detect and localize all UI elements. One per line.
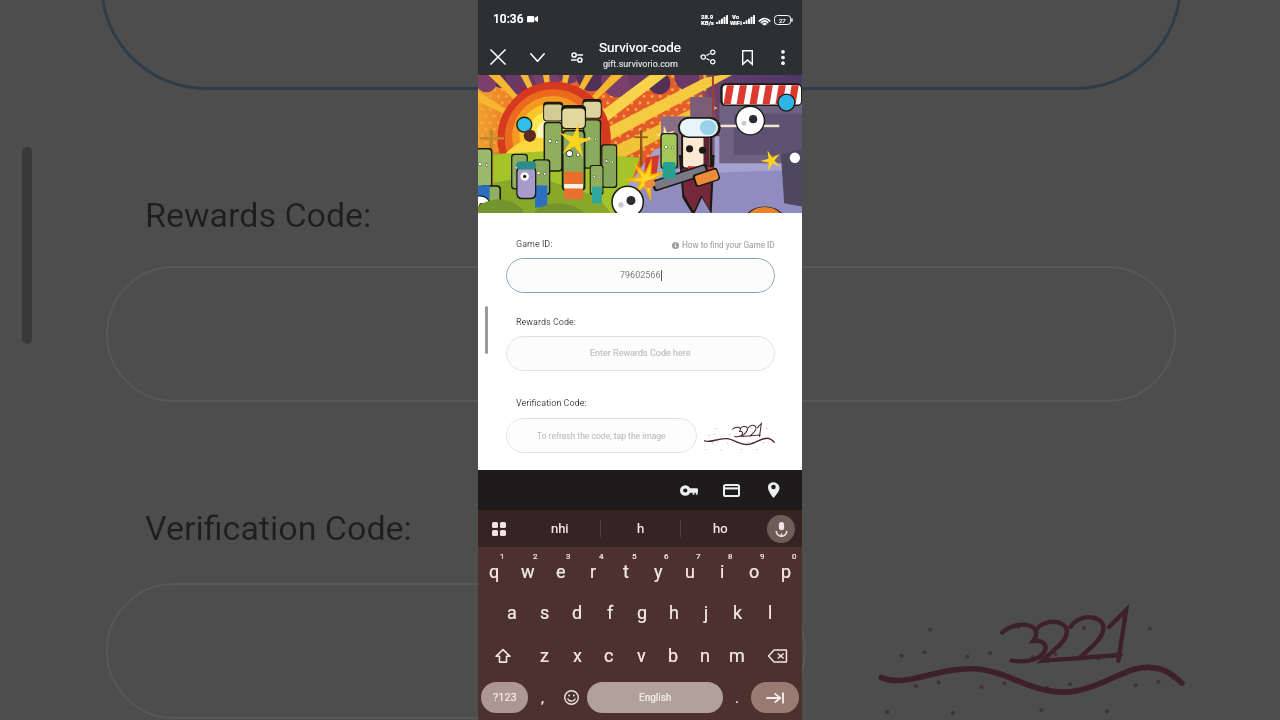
button[interactable]: h bbox=[658, 591, 690, 634]
button[interactable]: Next bbox=[751, 682, 799, 713]
staticText: English bbox=[639, 692, 672, 704]
button[interactable]: Emoji bbox=[556, 682, 587, 713]
button[interactable]: Enter Rewards Code here bbox=[506, 336, 775, 371]
staticText: Game ID: bbox=[516, 239, 553, 250]
staticText: g bbox=[637, 602, 648, 623]
button[interactable]: y bbox=[642, 547, 674, 591]
staticText: Survivor-code bbox=[599, 39, 681, 55]
staticText: 5 bbox=[632, 552, 637, 561]
button[interactable]: More options bbox=[766, 40, 800, 74]
staticText: 7 bbox=[696, 552, 701, 561]
staticText: gift.survivorio.com bbox=[603, 59, 678, 70]
button[interactable]: j bbox=[690, 591, 722, 634]
button[interactable]: Page info bbox=[560, 40, 594, 74]
button[interactable]: Clipboard bbox=[478, 510, 520, 547]
staticText: 2 bbox=[533, 552, 538, 561]
staticText: o bbox=[749, 561, 760, 582]
staticText: h bbox=[637, 521, 645, 536]
button[interactable]: Refresh verification code image bbox=[703, 417, 775, 453]
button[interactable]: a bbox=[495, 591, 528, 634]
staticText: 6 bbox=[664, 552, 669, 561]
button[interactable]: How to find your Game ID bbox=[672, 240, 775, 250]
staticText: t bbox=[623, 561, 629, 582]
button[interactable]: Close bbox=[481, 40, 515, 74]
staticText: How to find your Game ID bbox=[682, 240, 775, 250]
button[interactable]: c bbox=[593, 634, 625, 677]
button[interactable]: l bbox=[754, 591, 786, 634]
staticText: 9 bbox=[760, 552, 765, 561]
button[interactable]: b bbox=[657, 634, 689, 677]
staticText: 4 bbox=[599, 552, 604, 561]
staticText: nhi bbox=[551, 521, 569, 536]
staticText: h bbox=[669, 602, 679, 623]
button[interactable]: Voice input bbox=[760, 510, 802, 547]
button[interactable]: v bbox=[625, 634, 657, 677]
button[interactable]: w bbox=[511, 547, 544, 591]
staticText: To refresh the co bbox=[230, 627, 485, 667]
staticText: e bbox=[556, 561, 566, 582]
button[interactable]: Share bbox=[691, 40, 725, 74]
button[interactable]: Addresses bbox=[752, 470, 794, 510]
staticText: a bbox=[507, 602, 517, 623]
button[interactable]: s bbox=[528, 591, 561, 634]
button[interactable]: nhi bbox=[520, 510, 600, 547]
staticText: f bbox=[607, 602, 614, 623]
staticText: 0 bbox=[792, 552, 797, 561]
staticText: u bbox=[685, 561, 695, 582]
staticText: z bbox=[540, 645, 549, 666]
button[interactable]: d bbox=[561, 591, 594, 634]
button[interactable]: t bbox=[610, 547, 642, 591]
staticText: p bbox=[781, 561, 792, 582]
button[interactable]: English bbox=[587, 682, 723, 713]
button[interactable]: Bookmark bbox=[730, 40, 764, 74]
button[interactable]: u bbox=[674, 547, 706, 591]
staticText: w bbox=[521, 561, 535, 582]
button[interactable]: r bbox=[577, 547, 610, 591]
button[interactable]: q bbox=[478, 547, 511, 591]
staticText: Verification Code: bbox=[516, 398, 587, 409]
button[interactable]: g bbox=[626, 591, 658, 634]
staticText: re bbox=[794, 316, 824, 356]
staticText: , bbox=[541, 689, 544, 707]
button[interactable]: h bbox=[601, 510, 680, 547]
staticText: m bbox=[729, 645, 745, 666]
button[interactable]: , bbox=[528, 682, 556, 713]
button[interactable]: o bbox=[738, 547, 770, 591]
button[interactable]: ho bbox=[681, 510, 760, 547]
staticText: Rewards Code: bbox=[145, 195, 372, 235]
button[interactable]: Passwords bbox=[668, 470, 710, 510]
button[interactable]: z bbox=[528, 634, 561, 677]
button[interactable]: 79602566 bbox=[506, 258, 775, 293]
staticText: 10:36 bbox=[493, 12, 524, 26]
staticText: x bbox=[573, 645, 582, 666]
staticText: ho bbox=[713, 521, 728, 536]
button[interactable]: x bbox=[561, 634, 593, 677]
button[interactable]: f bbox=[594, 591, 626, 634]
button[interactable]: . bbox=[723, 682, 751, 713]
button[interactable]: ?123 bbox=[481, 682, 528, 713]
staticText: 27 bbox=[779, 17, 786, 24]
button[interactable]: Payment methods bbox=[710, 470, 752, 510]
staticText: 79602566 bbox=[620, 270, 661, 281]
button[interactable]: Backspace bbox=[753, 634, 802, 677]
button[interactable]: Shift bbox=[478, 634, 528, 677]
button[interactable]: To refresh the code, tap the image bbox=[506, 418, 697, 453]
staticText: En bbox=[447, 316, 486, 356]
staticText: Rewards Code: bbox=[516, 317, 576, 328]
staticText: y bbox=[654, 561, 663, 582]
staticText: KB/s bbox=[701, 19, 714, 26]
button[interactable]: i bbox=[706, 547, 738, 591]
button[interactable]: k bbox=[722, 591, 754, 634]
staticText: To refresh the code, tap the image bbox=[537, 431, 666, 441]
button[interactable]: m bbox=[721, 634, 753, 677]
button[interactable]: Collapse bbox=[520, 40, 554, 74]
staticText: Vo bbox=[732, 13, 740, 20]
button[interactable]: e bbox=[544, 547, 577, 591]
button[interactable]: n bbox=[689, 634, 721, 677]
staticText: s bbox=[540, 602, 550, 623]
staticText: 28.9 bbox=[701, 13, 714, 20]
staticText: ?123 bbox=[493, 691, 517, 704]
staticText: c bbox=[604, 645, 614, 666]
staticText: r bbox=[590, 561, 597, 582]
button[interactable]: p bbox=[770, 547, 802, 591]
